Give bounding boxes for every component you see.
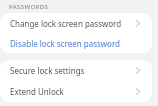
staticText: PASSWORDS: [9, 3, 49, 11]
staticText: Secure lock settings: [10, 65, 134, 76]
staticText: Change lock screen password: [10, 18, 134, 29]
button[interactable]: Extend Unlock: [0, 81, 152, 102]
button[interactable]: Disable lock screen password: [0, 33, 152, 53]
staticText: Disable lock screen password: [10, 38, 134, 49]
staticText: Extend Unlock: [10, 86, 134, 97]
button[interactable]: Secure lock settings: [0, 60, 152, 81]
button[interactable]: Change lock screen password: [0, 13, 152, 33]
